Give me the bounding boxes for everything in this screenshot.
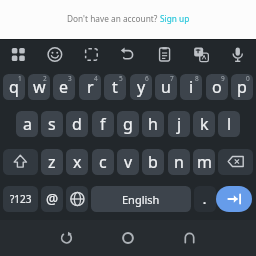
- staticText: c: [99, 151, 107, 173]
- staticText: n: [174, 151, 184, 173]
- button[interactable]: [3, 149, 38, 175]
- staticText: 8: [195, 74, 199, 83]
- button[interactable]: [53, 224, 80, 251]
- button[interactable]: [188, 42, 214, 68]
- staticText: x: [73, 151, 82, 173]
- staticText: y: [137, 76, 146, 98]
- staticText: h: [148, 113, 158, 135]
- button[interactable]: [225, 42, 251, 68]
- staticText: b: [148, 151, 158, 173]
- button[interactable]: h: [142, 111, 164, 137]
- staticText: a: [23, 113, 32, 135]
- button[interactable]: b: [142, 149, 164, 175]
- staticText: ?123: [10, 192, 32, 206]
- staticText: q: [9, 76, 19, 98]
- button[interactable]: g: [117, 111, 139, 137]
- staticText: 0: [246, 74, 250, 83]
- button[interactable]: [78, 42, 104, 68]
- button[interactable]: k: [193, 111, 215, 137]
- staticText: 4: [94, 74, 98, 83]
- button[interactable]: [115, 42, 141, 68]
- button[interactable]: e: [53, 74, 75, 100]
- button[interactable]: [42, 42, 68, 68]
- button[interactable]: j: [168, 111, 190, 137]
- staticText: English: [122, 192, 160, 207]
- staticText: 5: [119, 74, 123, 83]
- button[interactable]: s: [41, 111, 63, 137]
- staticText: u: [161, 76, 171, 98]
- button[interactable]: z: [41, 149, 63, 175]
- staticText: .: [203, 192, 207, 207]
- staticText: 1: [18, 74, 22, 83]
- button[interactable]: [5, 42, 31, 68]
- staticText: g: [123, 113, 133, 135]
- button[interactable]: @: [41, 186, 63, 212]
- button[interactable]: x: [66, 149, 88, 175]
- button[interactable]: [152, 42, 178, 68]
- staticText: k: [200, 113, 209, 135]
- staticText: 7: [170, 74, 174, 83]
- staticText: 3: [68, 74, 72, 83]
- button[interactable]: d: [66, 111, 88, 137]
- button[interactable]: c: [92, 149, 114, 175]
- staticText: w: [33, 76, 46, 98]
- button[interactable]: [176, 224, 203, 251]
- staticText: r: [87, 76, 94, 98]
- button[interactable]: p: [231, 74, 253, 100]
- staticText: p: [237, 76, 247, 98]
- button[interactable]: ?123: [3, 186, 38, 212]
- button[interactable]: [216, 186, 252, 212]
- button[interactable]: y: [130, 74, 152, 100]
- staticText: t: [112, 76, 118, 98]
- button[interactable]: r: [79, 74, 101, 100]
- staticText: f: [100, 113, 106, 135]
- button[interactable]: a: [16, 111, 38, 137]
- staticText: v: [124, 151, 133, 173]
- button[interactable]: .: [194, 186, 216, 212]
- staticText: 2: [43, 74, 47, 83]
- button[interactable]: v: [117, 149, 139, 175]
- staticText: o: [212, 76, 222, 98]
- staticText: j: [177, 113, 182, 135]
- button[interactable]: [114, 224, 141, 251]
- button[interactable]: w: [28, 74, 50, 100]
- button[interactable]: q: [3, 74, 25, 100]
- button[interactable]: Sign up: [160, 13, 190, 24]
- staticText: l: [227, 113, 232, 135]
- button[interactable]: [218, 149, 253, 175]
- button[interactable]: t: [104, 74, 126, 100]
- staticText: m: [197, 151, 212, 173]
- button[interactable]: l: [218, 111, 240, 137]
- button[interactable]: f: [92, 111, 114, 137]
- staticText: @: [46, 190, 59, 208]
- button[interactable]: English: [91, 186, 191, 212]
- staticText: 9: [221, 74, 225, 83]
- button[interactable]: u: [155, 74, 177, 100]
- staticText: i: [189, 76, 194, 98]
- staticText: z: [48, 151, 56, 173]
- button[interactable]: [66, 186, 88, 212]
- button[interactable]: m: [193, 149, 215, 175]
- staticText: d: [72, 113, 82, 135]
- staticText: Don't have an account?: [67, 13, 160, 24]
- button[interactable]: o: [206, 74, 228, 100]
- staticText: s: [48, 113, 56, 135]
- button[interactable]: n: [168, 149, 190, 175]
- staticText: e: [59, 76, 69, 98]
- button[interactable]: i: [180, 74, 202, 100]
- staticText: 6: [145, 74, 149, 83]
